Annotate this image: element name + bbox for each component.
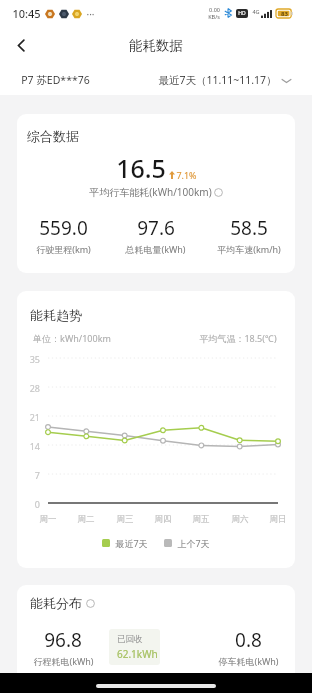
staticText: 559.0: [39, 215, 88, 241]
staticText: 最近7天: [115, 537, 148, 549]
staticText: 58.5: [230, 215, 268, 241]
staticText: 上个7天: [177, 537, 210, 549]
staticText: 周三: [113, 514, 137, 525]
button[interactable]: 最近7天: [102, 537, 148, 549]
staticText: 周一: [36, 514, 60, 525]
staticText: 平均气温：18.5(℃): [199, 332, 277, 344]
staticText: 62.1kWh: [117, 647, 158, 661]
button[interactable]: 最近7天（11.11~11.17）: [158, 73, 292, 87]
staticText: 周六: [228, 514, 252, 525]
staticText: 21: [22, 411, 40, 423]
staticText: 行驶里程(km): [36, 243, 91, 255]
staticText: 能耗分布: [30, 595, 82, 611]
staticText: 96.8: [44, 627, 82, 653]
staticText: 0.8: [235, 627, 262, 653]
staticText: 能耗数据: [129, 37, 183, 54]
button[interactable]: Back: [6, 30, 36, 60]
staticText: 周日: [266, 514, 290, 525]
staticText: 7: [22, 469, 40, 481]
staticText: 最近7天（11.11~11.17）: [158, 73, 277, 87]
staticText: 7.1%: [176, 169, 197, 181]
staticText: 平均车速(km/h): [217, 243, 281, 255]
staticText: 总耗电量(kWh): [125, 243, 186, 255]
staticText: 16.5: [116, 151, 166, 185]
button[interactable]: 上个7天: [164, 537, 210, 549]
staticText: 单位：kWh/100km: [33, 332, 111, 344]
staticText: 10:45: [12, 6, 41, 21]
staticText: 0: [22, 498, 40, 510]
staticText: 综合数据: [27, 128, 79, 144]
staticText: 4G: [252, 8, 260, 15]
staticText: 停车耗电(kWh): [218, 655, 279, 667]
staticText: 平均行车能耗(kWh/100km): [89, 185, 212, 199]
staticText: 行程耗电(kWh): [33, 655, 94, 667]
staticText: 周四: [151, 514, 175, 525]
staticText: KB/s: [208, 13, 220, 20]
staticText: P7 苏ED***76: [21, 73, 90, 87]
staticText: 14: [22, 440, 40, 452]
staticText: HD: [238, 10, 246, 17]
staticText: 周二: [74, 514, 98, 525]
staticText: 已回收: [117, 634, 143, 645]
staticText: ···: [86, 7, 95, 21]
staticText: 0.00: [209, 6, 220, 13]
staticText: 周五: [189, 514, 213, 525]
staticText: 35: [22, 353, 40, 365]
staticText: 83: [281, 10, 288, 18]
staticText: 能耗趋势: [30, 307, 82, 323]
staticText: 97.6: [137, 215, 175, 241]
staticText: 28: [22, 382, 40, 394]
